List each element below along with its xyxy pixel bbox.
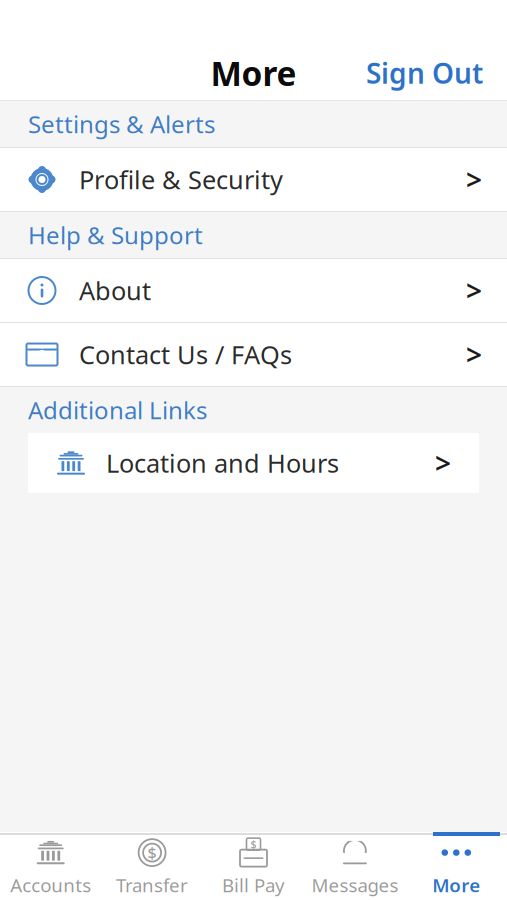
button[interactable]: $ (203, 836, 304, 900)
staticText: Help & Support (28, 219, 203, 251)
button[interactable]: Sign Out (342, 44, 507, 102)
button[interactable]: Profile & Security (0, 148, 507, 212)
staticText: Bill Pay (222, 873, 285, 897)
staticText: > (466, 272, 482, 309)
staticText: Location and Hours (106, 446, 339, 480)
staticText: Messages (311, 873, 398, 897)
button[interactable]: Contact Us / FAQs (0, 323, 507, 387)
staticText: More (210, 51, 296, 95)
staticText: More (432, 873, 480, 897)
staticText: About (79, 274, 151, 307)
staticText: Settings & Alerts (28, 108, 215, 140)
staticText: > (435, 444, 451, 482)
staticText: > (466, 161, 482, 198)
button[interactable]: $ (101, 836, 203, 900)
staticText: Transfer (116, 873, 188, 897)
staticText: Accounts (10, 873, 91, 897)
button[interactable]: Location and Hours (28, 433, 479, 493)
staticText: Contact Us / FAQs (79, 338, 292, 371)
staticText: Additional Links (28, 394, 207, 426)
staticText: > (466, 336, 482, 373)
button[interactable]: Accounts (0, 836, 101, 900)
staticText: Sign Out (366, 54, 483, 92)
button[interactable]: More (406, 836, 507, 900)
button[interactable]: Messages (304, 836, 406, 900)
staticText: $ (148, 842, 157, 863)
button[interactable]: About (0, 259, 507, 323)
staticText: $ (250, 837, 256, 851)
staticText: Profile & Security (79, 163, 283, 196)
